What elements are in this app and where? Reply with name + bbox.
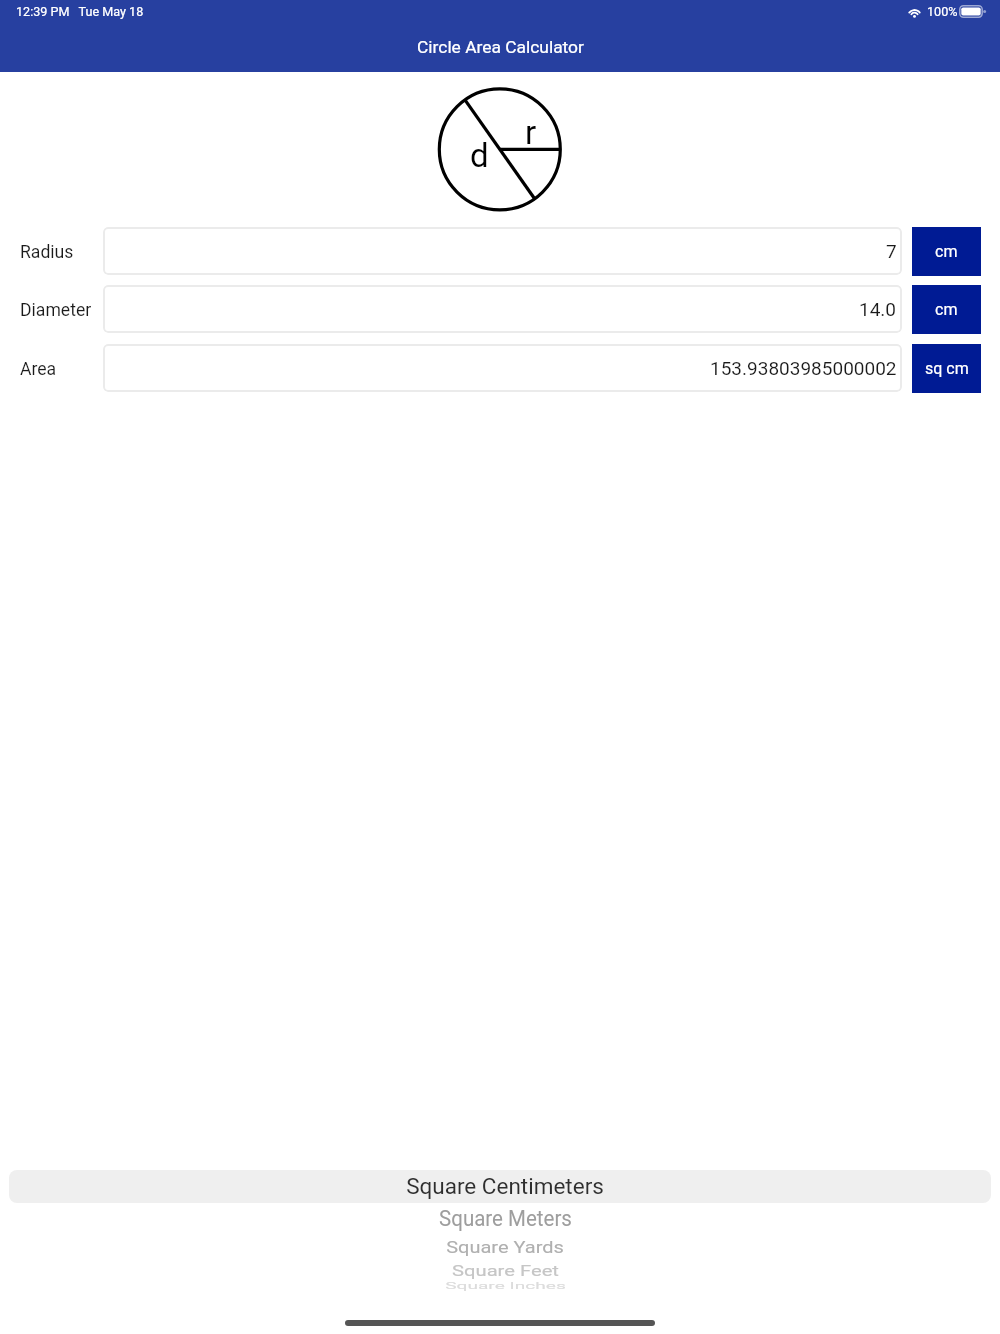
staticText: Radius — [20, 242, 74, 263]
staticText: 14.0 — [859, 298, 897, 320]
staticText: r — [525, 113, 537, 152]
staticText: Square Centimeters — [406, 1173, 604, 1199]
button[interactable]: Square Feet — [5, 1257, 1000, 1285]
staticText: 153.93803985000002 — [710, 357, 897, 379]
button[interactable]: Square Meters — [5, 1198, 1000, 1240]
staticText: 100% — [927, 4, 958, 19]
staticText: 12:39 PM Tue May 18 — [16, 4, 144, 19]
button[interactable]: Square Yards — [5, 1229, 1000, 1263]
button[interactable]: sq cm — [912, 344, 981, 393]
staticText: Diameter — [20, 300, 92, 321]
staticText: d — [470, 136, 489, 175]
button[interactable]: 153.93803985000002 — [103, 344, 902, 392]
staticText: Square Feet — [452, 1263, 559, 1279]
staticText: cm — [935, 300, 958, 319]
staticText: Circle Area Calculator — [417, 37, 584, 57]
staticText: sq cm — [925, 359, 969, 378]
button[interactable]: 7 — [103, 227, 902, 275]
button[interactable]: cm — [912, 227, 981, 276]
staticText: Square Yards — [446, 1237, 564, 1256]
other: Wi-Fi — [906, 5, 923, 18]
other: Battery 100 percent — [959, 5, 987, 18]
staticText: cm — [935, 242, 958, 261]
button[interactable]: Square Inches — [5, 1277, 1000, 1295]
staticText: Square Meters — [439, 1206, 572, 1231]
button[interactable]: Square Centimeters — [9, 1170, 991, 1203]
staticText: Area — [20, 359, 57, 380]
staticText: Square Inches — [445, 1281, 566, 1291]
staticText: 7 — [886, 240, 897, 262]
button[interactable]: 14.0 — [103, 285, 902, 333]
button[interactable]: cm — [912, 285, 981, 334]
